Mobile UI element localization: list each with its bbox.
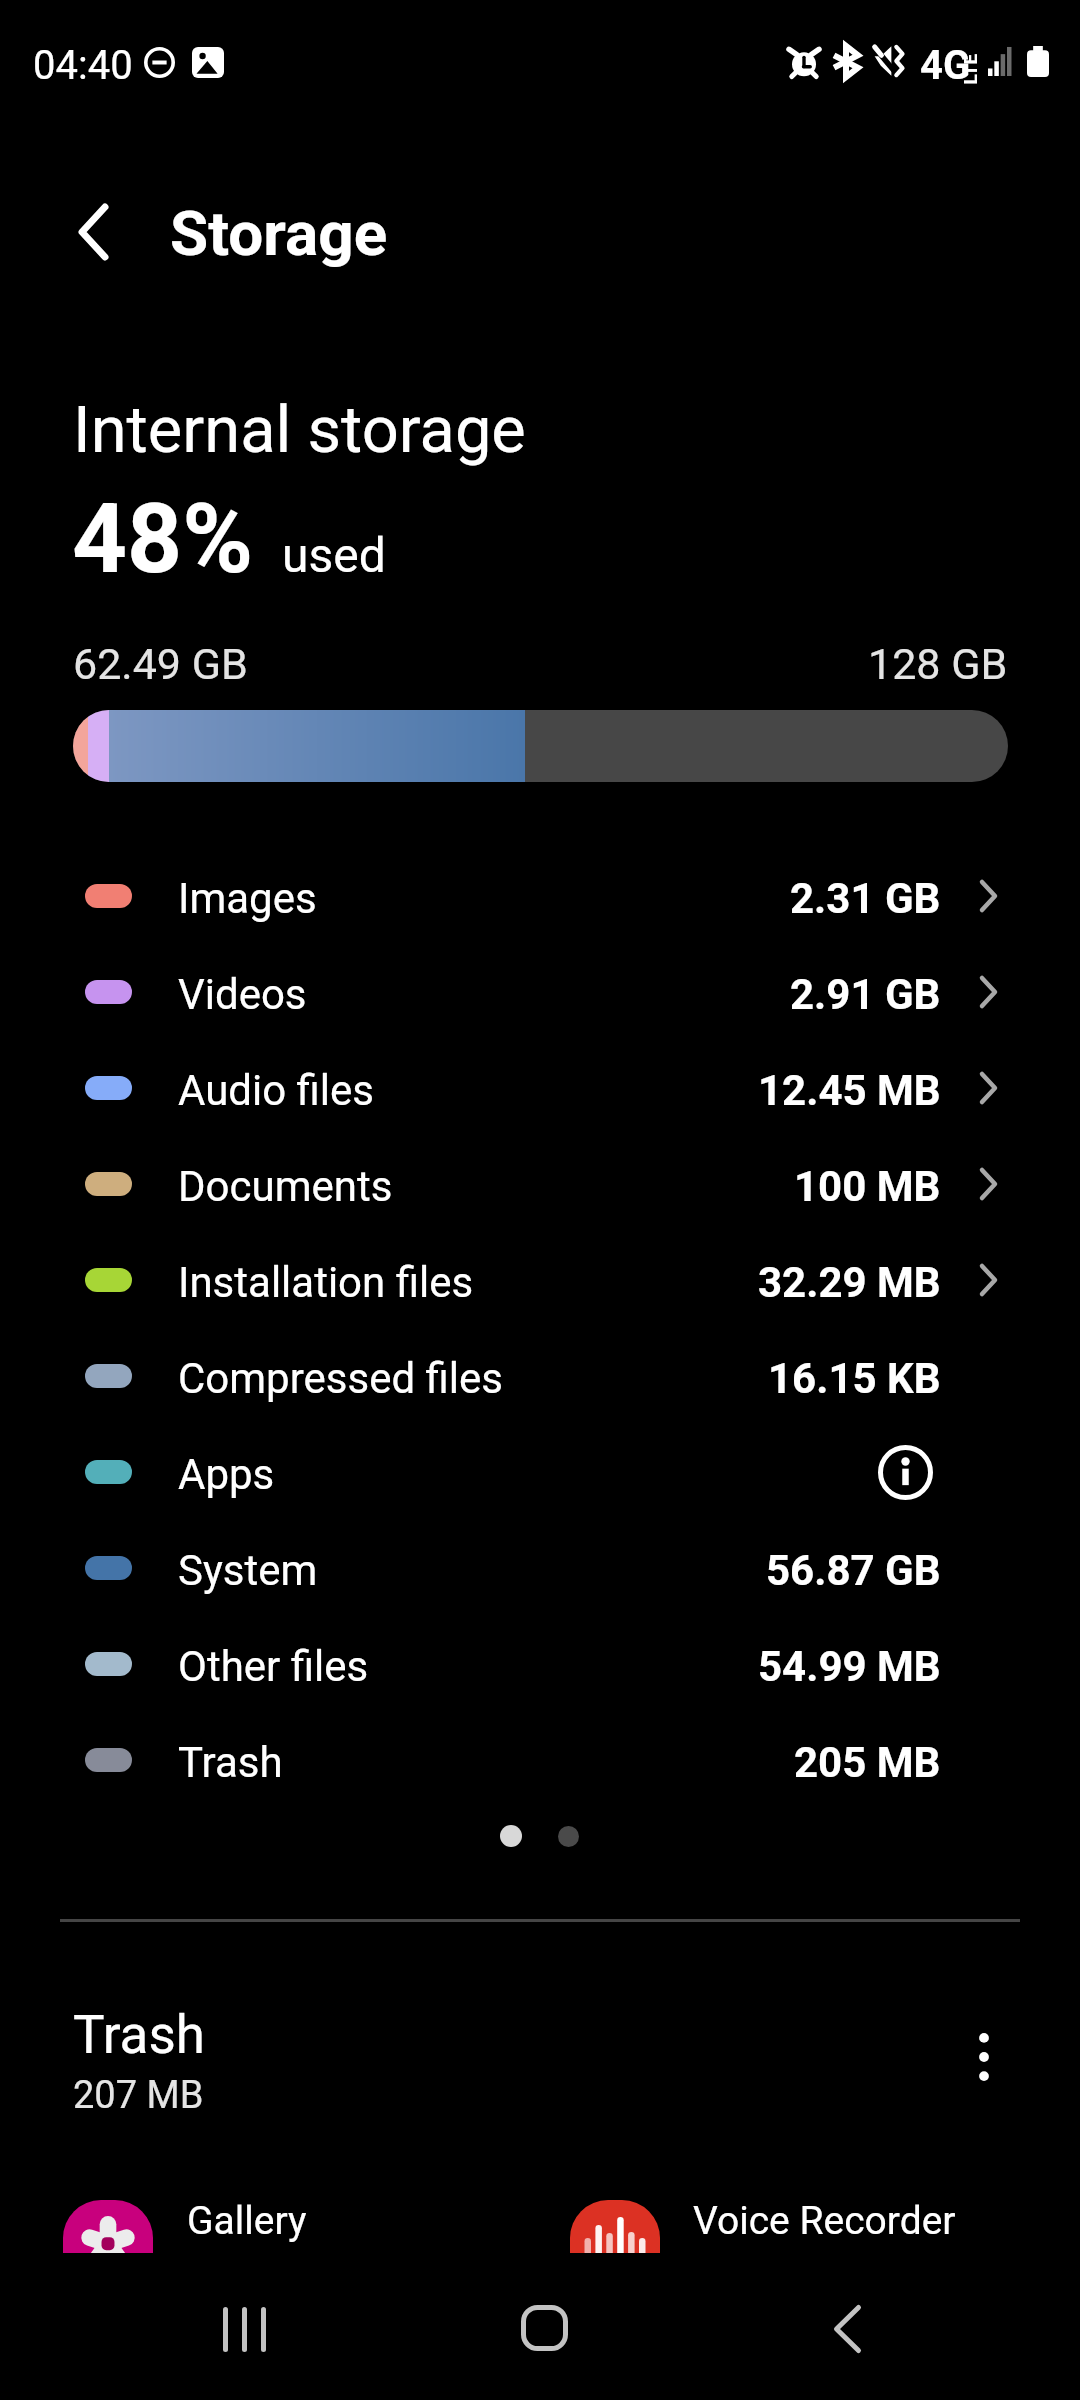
button[interactable]: Trash bbox=[0, 1712, 1080, 1808]
staticText: Installation files bbox=[178, 1258, 474, 1307]
button[interactable]: Gallery bbox=[63, 2200, 153, 2253]
staticText: 128 GB bbox=[868, 639, 1008, 689]
staticText: 12.45 MB bbox=[758, 1066, 941, 1115]
staticText: Audio files bbox=[178, 1066, 375, 1115]
staticText: Documents bbox=[178, 1162, 393, 1211]
button[interactable]: Other files bbox=[0, 1616, 1080, 1712]
button[interactable]: Back bbox=[792, 2274, 902, 2384]
button[interactable]: Audio files bbox=[0, 1040, 1080, 1136]
staticText: 205 MB bbox=[794, 1738, 941, 1787]
button[interactable]: Recent apps bbox=[191, 2274, 301, 2384]
staticText: used bbox=[282, 527, 386, 583]
staticText: 54.99 MB bbox=[758, 1642, 941, 1691]
staticText: 100 MB bbox=[794, 1162, 941, 1211]
staticText: LTE bbox=[958, 53, 980, 84]
staticText: 2.91 GB bbox=[790, 970, 941, 1019]
staticText: Internal storage bbox=[73, 392, 526, 468]
button[interactable]: Installation files bbox=[0, 1232, 1080, 1328]
staticText: Images bbox=[178, 874, 317, 923]
staticText: 56.87 GB bbox=[766, 1546, 941, 1595]
staticText: Videos bbox=[178, 970, 307, 1019]
staticText: Apps bbox=[178, 1450, 275, 1499]
button[interactable]: Home bbox=[489, 2273, 599, 2383]
staticText: 48% bbox=[72, 483, 254, 596]
staticText: Trash bbox=[73, 2004, 205, 2066]
staticText: Other files bbox=[178, 1642, 369, 1691]
staticText: 207 MB bbox=[73, 2073, 204, 2118]
staticText: 4G bbox=[920, 42, 971, 89]
button[interactable]: Videos bbox=[0, 944, 1080, 1040]
button[interactable]: Voice Recorder bbox=[570, 2200, 660, 2253]
button[interactable]: Documents bbox=[0, 1136, 1080, 1232]
other: Apps info bbox=[878, 1445, 933, 1500]
staticText: 2.31 GB bbox=[790, 874, 941, 923]
button[interactable]: Apps bbox=[0, 1424, 1080, 1520]
staticText: Storage bbox=[170, 197, 388, 270]
staticText: 04:40 bbox=[33, 42, 133, 89]
staticText: Trash bbox=[178, 1738, 283, 1787]
staticText: Compressed files bbox=[178, 1354, 503, 1403]
staticText: 62.49 GB bbox=[73, 639, 248, 689]
button[interactable]: Voice Recorder bbox=[693, 2198, 956, 2244]
button[interactable]: System bbox=[0, 1520, 1080, 1616]
button[interactable]: Gallery bbox=[187, 2198, 307, 2244]
staticText: 32.29 MB bbox=[758, 1258, 941, 1307]
button[interactable]: Navigate up bbox=[51, 190, 135, 274]
button[interactable]: Compressed files bbox=[0, 1328, 1080, 1424]
button[interactable]: Images bbox=[0, 848, 1080, 944]
staticText: System bbox=[178, 1546, 318, 1595]
button[interactable]: More options bbox=[940, 2013, 1028, 2101]
staticText: 16.15 KB bbox=[768, 1354, 941, 1403]
